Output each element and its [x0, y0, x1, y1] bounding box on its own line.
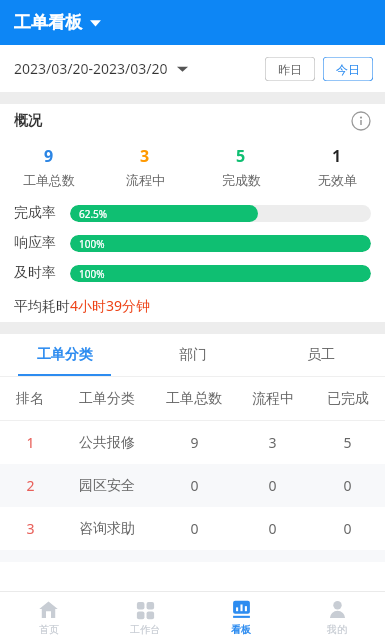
button[interactable]: 1	[0, 421, 385, 464]
staticText: 9	[44, 145, 54, 167]
staticText: 3	[268, 433, 277, 452]
staticText: 响应率	[14, 234, 70, 252]
staticText: 我的	[327, 623, 347, 636]
staticText: 公共报修	[79, 434, 135, 452]
staticText: 已完成	[327, 390, 369, 408]
staticText: 工单看板	[14, 12, 82, 33]
staticText: 2	[26, 476, 35, 495]
staticText: 概况	[14, 112, 42, 130]
button[interactable]: 工作台	[97, 592, 193, 642]
staticText: 9	[190, 433, 199, 452]
staticText: 5	[236, 145, 246, 167]
button[interactable]: 工单分类	[0, 334, 129, 376]
button[interactable]: 1	[289, 138, 385, 194]
staticText: 排名	[16, 390, 44, 408]
button[interactable]: 部门	[129, 334, 257, 376]
staticText: 完成数	[222, 172, 261, 188]
button[interactable]: 昨日	[265, 57, 315, 81]
staticText: 工单分类	[37, 346, 93, 364]
button[interactable]: 我的	[289, 592, 385, 642]
staticText: 5	[343, 433, 352, 452]
staticText: 3	[140, 145, 150, 167]
button[interactable]: 看板	[193, 592, 289, 642]
staticText: 0	[190, 476, 199, 495]
staticText: 园区安全	[79, 477, 135, 495]
staticText: 0	[268, 476, 277, 495]
button[interactable]: 2	[0, 464, 385, 507]
staticText: 1	[332, 145, 342, 167]
staticText: 无效单	[318, 172, 357, 188]
staticText: 今日	[336, 62, 360, 77]
staticText: 0	[343, 476, 352, 495]
staticText: 工单总数	[23, 172, 75, 188]
button[interactable]: 3	[0, 507, 385, 550]
staticText: 完成率	[14, 204, 70, 222]
staticText: 员工	[307, 346, 335, 364]
staticText: 工单分类	[79, 390, 135, 408]
button[interactable]: 今日	[323, 57, 373, 81]
button[interactable]: 首页	[0, 592, 97, 642]
staticText: 62.5%	[79, 207, 108, 221]
staticText: 昨日	[278, 62, 302, 77]
button[interactable]: 2023/03/20-2023/03/20	[14, 59, 188, 78]
button[interactable]: 员工	[257, 334, 385, 376]
button[interactable]: 3	[97, 138, 193, 194]
staticText: 部门	[179, 346, 207, 364]
staticText: 咨询求助	[79, 520, 135, 538]
staticText: 工作台	[130, 623, 160, 636]
staticText: 0	[268, 519, 277, 538]
staticText: 100%	[79, 267, 105, 281]
staticText: 及时率	[14, 264, 70, 282]
staticText: 1	[26, 433, 35, 452]
staticText: 流程中	[126, 172, 165, 188]
staticText: 0	[343, 519, 352, 538]
staticText: 3	[26, 519, 35, 538]
button[interactable]: Info	[351, 111, 371, 131]
button[interactable]: 9	[0, 138, 97, 194]
staticText: 看板	[231, 623, 251, 636]
staticText: 2023/03/20-2023/03/20	[14, 59, 168, 78]
staticText: 100%	[79, 237, 105, 251]
staticText: 平均耗时4小时39分钟	[14, 296, 151, 315]
staticText: 工单总数	[166, 390, 222, 408]
button[interactable]: 5	[193, 138, 289, 194]
button[interactable]: 工单看板	[14, 12, 102, 33]
staticText: 0	[190, 519, 199, 538]
staticText: 首页	[39, 623, 59, 636]
staticText: 流程中	[252, 390, 294, 408]
